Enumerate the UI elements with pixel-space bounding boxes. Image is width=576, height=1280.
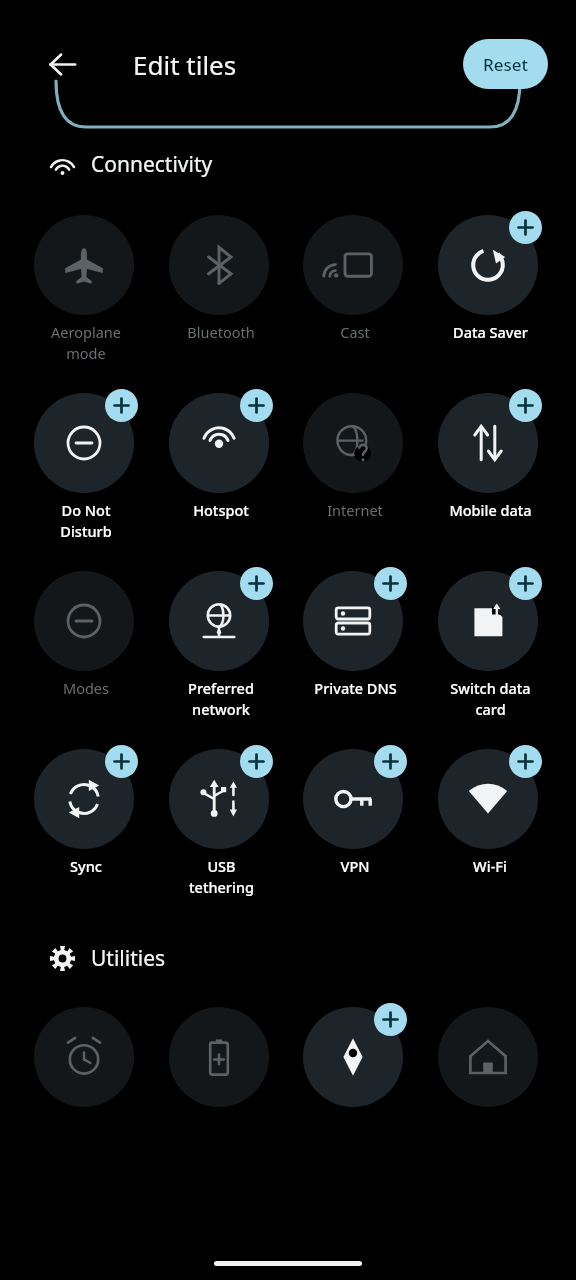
- button[interactable]: Sync: [34, 745, 138, 876]
- button[interactable]: Bluetooth: [169, 211, 273, 342]
- button[interactable]: Hotspot: [169, 389, 273, 520]
- staticText: Bluetooth: [187, 322, 255, 342]
- staticText: Aeroplane mode: [51, 322, 121, 364]
- staticText: Connectivity: [91, 150, 213, 179]
- staticText: Utilities: [91, 944, 166, 973]
- staticText: VPN: [340, 856, 370, 876]
- button[interactable]: Private DNS: [303, 567, 407, 698]
- staticText: Preferred network: [188, 678, 254, 720]
- button[interactable]: USB tethering: [169, 745, 273, 898]
- button[interactable]: Add home tile: [438, 1003, 542, 1107]
- staticText: Data Saver: [453, 322, 528, 342]
- staticText: Hotspot: [193, 500, 249, 520]
- button[interactable]: Preferred network: [169, 567, 273, 720]
- staticText: Internet: [327, 500, 383, 520]
- button[interactable]: Mobile data: [438, 389, 542, 520]
- staticText: Modes: [63, 678, 109, 698]
- button[interactable]: Add loc tile: [303, 1003, 407, 1107]
- staticText: Mobile data: [449, 500, 532, 520]
- button[interactable]: Add alarm tile: [34, 1003, 138, 1107]
- button[interactable]: VPN: [303, 745, 407, 876]
- staticText: Wi-Fi: [473, 856, 507, 876]
- staticText: Reset: [483, 53, 529, 76]
- button[interactable]: Aeroplane mode: [34, 211, 138, 364]
- staticText: USB tethering: [189, 856, 254, 898]
- button[interactable]: Switch data card: [438, 567, 542, 720]
- button[interactable]: Back: [34, 36, 90, 92]
- button[interactable]: Modes: [34, 567, 138, 698]
- button[interactable]: Wi-Fi: [438, 745, 542, 876]
- button[interactable]: Reset: [463, 39, 548, 89]
- staticText: Private DNS: [314, 678, 397, 698]
- staticText: Sync: [70, 856, 102, 876]
- button[interactable]: Add batt tile: [169, 1003, 273, 1107]
- staticText: Cast: [340, 322, 370, 342]
- button[interactable]: Cast: [303, 211, 407, 342]
- staticText: Do Not Disturb: [60, 500, 112, 542]
- button[interactable]: Do Not Disturb: [34, 389, 138, 542]
- staticText: Switch data card: [450, 678, 531, 720]
- button[interactable]: Internet: [303, 389, 407, 520]
- staticText: Edit tiles: [133, 47, 237, 82]
- button[interactable]: Data Saver: [438, 211, 542, 342]
